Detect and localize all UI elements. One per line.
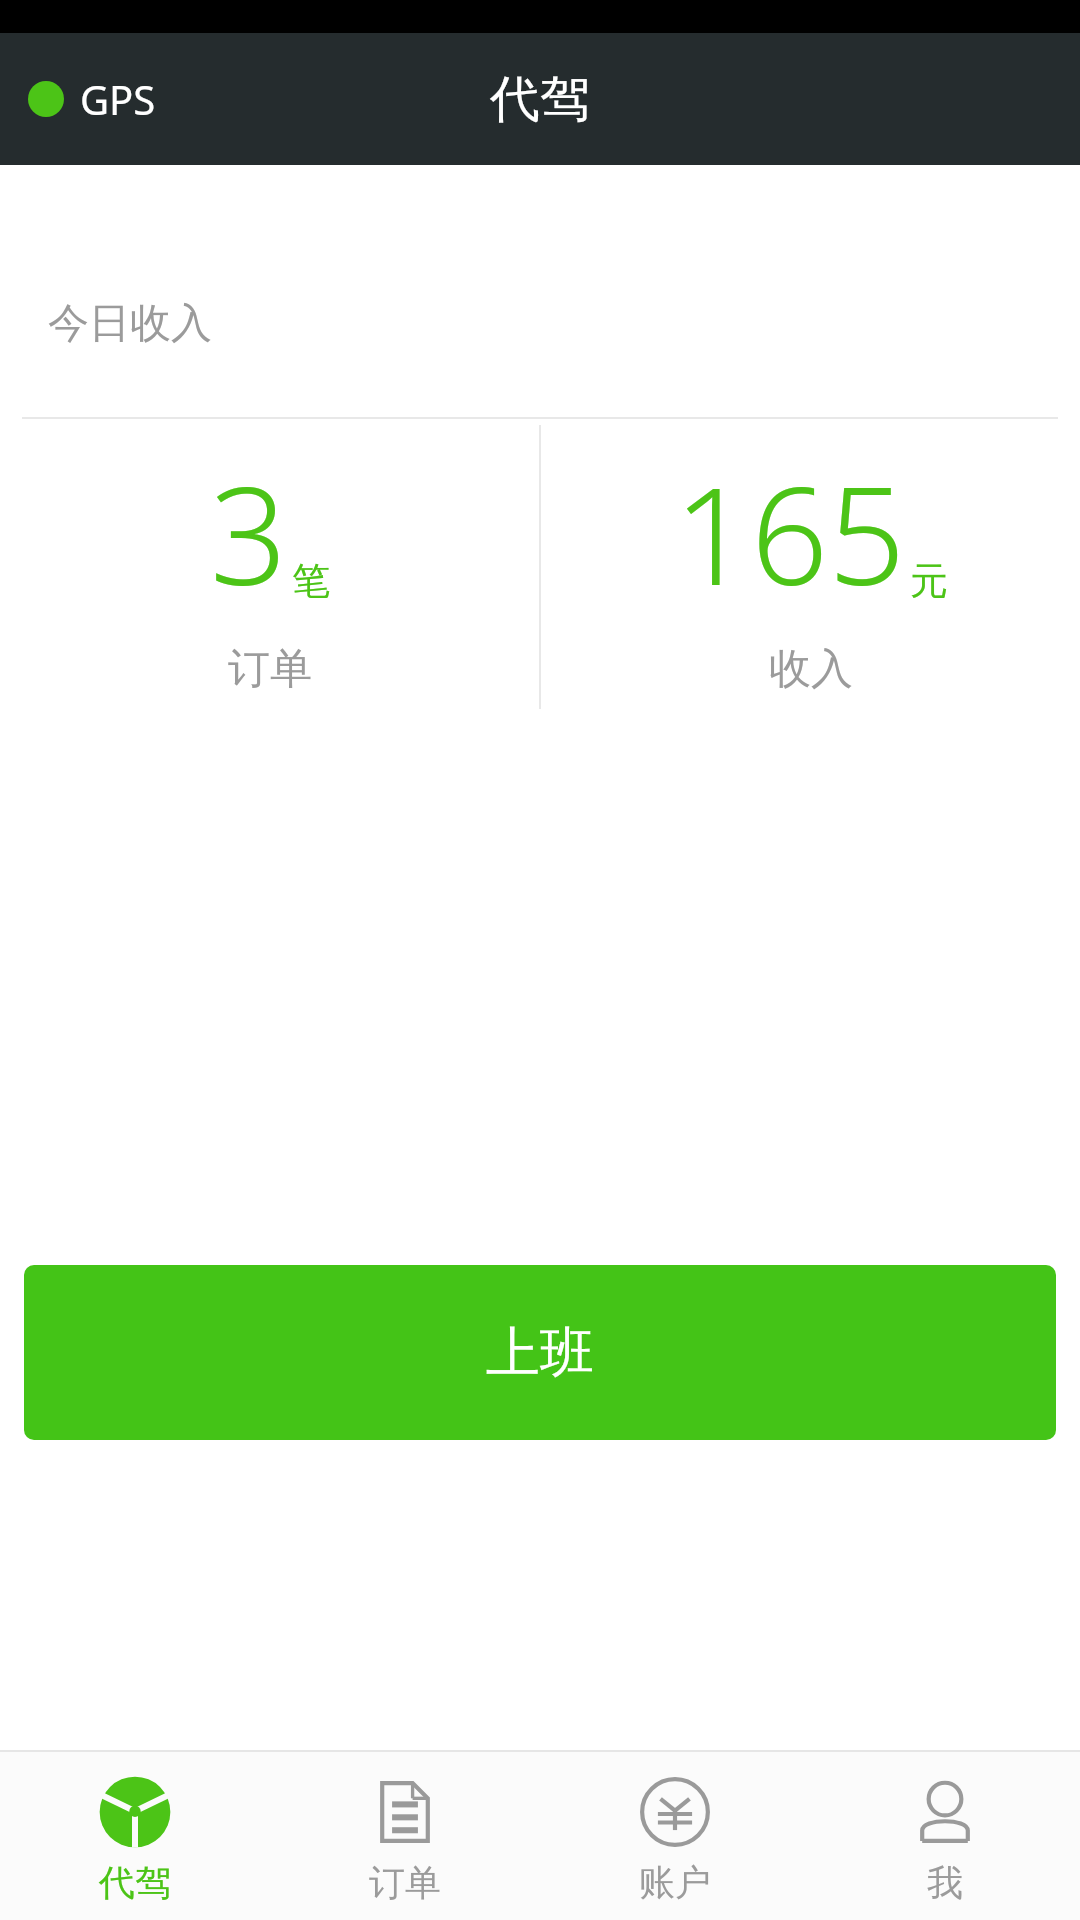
button[interactable]: 上班 bbox=[24, 1265, 1056, 1440]
button[interactable]: 账户 bbox=[540, 1752, 810, 1920]
staticText: 代驾 bbox=[490, 68, 590, 131]
staticText: 订单 bbox=[369, 1860, 441, 1905]
staticText: 今日收入 bbox=[48, 298, 212, 350]
staticText: 上班 bbox=[486, 1319, 594, 1387]
staticText: 元 bbox=[910, 557, 948, 605]
button[interactable]: 代驾 bbox=[0, 1752, 270, 1920]
staticText: 收入 bbox=[769, 643, 853, 696]
button[interactable]: GPS bbox=[22, 66, 162, 132]
staticText: 165 bbox=[674, 441, 906, 625]
button[interactable]: 订单 bbox=[270, 1752, 540, 1920]
staticText: 代驾 bbox=[99, 1860, 171, 1905]
staticText: 笔 bbox=[292, 557, 330, 605]
button[interactable]: 我 bbox=[810, 1752, 1080, 1920]
staticText: GPS bbox=[80, 72, 156, 126]
staticText: 我 bbox=[927, 1860, 963, 1905]
staticText: 订单 bbox=[228, 643, 312, 696]
staticText: 账户 bbox=[639, 1860, 711, 1905]
staticText: 3 bbox=[210, 441, 288, 625]
